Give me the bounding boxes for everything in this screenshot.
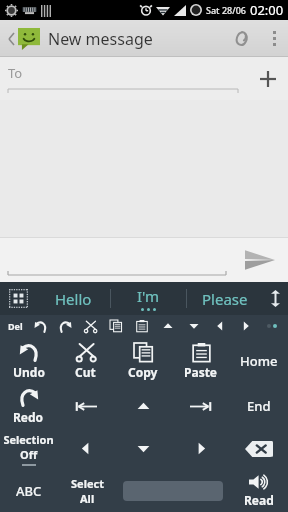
- button[interactable]: Cut: [57, 337, 114, 385]
- button[interactable]: Select: [58, 470, 117, 512]
- staticText: Sat 28/06: [206, 4, 246, 16]
- staticText: Copy: [128, 364, 158, 380]
- staticText: I'm: [137, 286, 160, 306]
- button[interactable]: I'm: [111, 282, 186, 315]
- staticText: Cut: [75, 364, 96, 380]
- button[interactable]: Home: [230, 337, 288, 385]
- staticText: Undo: [13, 364, 45, 380]
- staticText: Home: [240, 352, 278, 370]
- button[interactable]: End: [230, 385, 288, 427]
- button[interactable]: Move to line end: [172, 385, 230, 427]
- staticText: Paste: [184, 364, 218, 380]
- staticText: 02:00: [250, 1, 284, 19]
- button[interactable]: Down: [114, 427, 172, 470]
- button[interactable]: Redo: [53, 315, 78, 337]
- staticText: Hello: [55, 289, 92, 309]
- staticText: Off: [20, 447, 38, 462]
- button[interactable]: Attach: [222, 20, 260, 57]
- button[interactable]: Move to line start: [57, 385, 114, 427]
- button[interactable]: [8, 254, 226, 276]
- button[interactable]: Undo: [0, 337, 57, 385]
- button[interactable]: Right: [172, 427, 230, 470]
- staticText: To: [8, 64, 23, 82]
- staticText: Read: [244, 492, 274, 508]
- button[interactable]: Hello: [36, 282, 110, 315]
- button[interactable]: Copy: [103, 315, 129, 337]
- staticText: Selection: [3, 432, 54, 447]
- button[interactable]: Backspace: [230, 427, 288, 470]
- button[interactable]: Paste: [129, 315, 155, 337]
- button[interactable]: Undo: [28, 315, 53, 337]
- button[interactable]: Back: [4, 20, 18, 57]
- button[interactable]: Left: [207, 315, 233, 337]
- button[interactable]: Up: [155, 315, 181, 337]
- button[interactable]: Paste: [172, 337, 230, 385]
- button[interactable]: Del: [3, 315, 28, 337]
- button[interactable]: Selection: [0, 427, 57, 470]
- staticText: Please: [202, 289, 248, 309]
- button[interactable]: Page indicator: [259, 315, 285, 337]
- button[interactable]: Right: [233, 315, 259, 337]
- button[interactable]: Expand: [262, 282, 288, 315]
- button[interactable]: Read: [229, 470, 288, 512]
- button[interactable]: Left: [57, 427, 114, 470]
- staticText: End: [247, 397, 271, 415]
- button[interactable]: Please: [187, 282, 262, 315]
- button[interactable]: More options: [260, 20, 288, 57]
- staticText: Del: [8, 320, 23, 332]
- staticText: Redo: [13, 409, 44, 425]
- button[interactable]: Cut: [78, 315, 103, 337]
- button[interactable]: Send: [238, 238, 282, 282]
- button[interactable]: To: [8, 64, 238, 94]
- staticText: New message: [48, 28, 153, 50]
- staticText: ABC: [16, 482, 42, 500]
- button[interactable]: Add recipient: [248, 57, 288, 100]
- button[interactable]: Copy: [114, 337, 172, 385]
- button[interactable]: Redo: [0, 385, 57, 427]
- button[interactable]: ABC: [0, 470, 58, 512]
- button[interactable]: Keyboard layout: [0, 282, 36, 315]
- button[interactable]: Down: [181, 315, 207, 337]
- button[interactable]: Up: [114, 385, 172, 427]
- staticText: Select: [71, 476, 104, 491]
- staticText: All: [80, 491, 95, 506]
